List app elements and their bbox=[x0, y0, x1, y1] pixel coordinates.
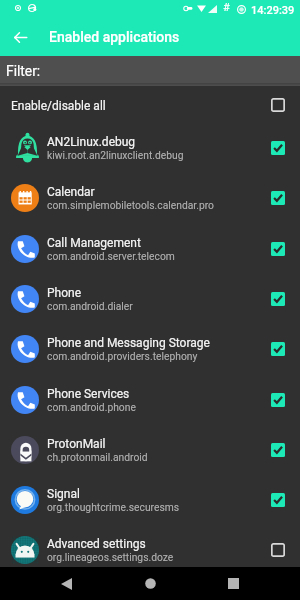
button[interactable]: AN2Linux.debug bbox=[0, 123, 300, 173]
staticText: com.android.providers.telephony bbox=[47, 350, 198, 362]
button[interactable]: Enable/disable all bbox=[0, 86, 300, 122]
staticText: Call Management bbox=[47, 236, 141, 250]
staticText: Enabled applications bbox=[49, 29, 180, 45]
staticText: Phone and Messaging Storage bbox=[47, 336, 210, 350]
button[interactable]: Home bbox=[134, 567, 167, 600]
staticText: com.android.phone bbox=[47, 401, 136, 413]
staticText: Advanced settings bbox=[47, 537, 146, 551]
staticText: org.thoughtcrime.securesms bbox=[47, 501, 180, 513]
staticText: Filter: bbox=[6, 63, 41, 79]
staticText: Enable/disable all bbox=[11, 99, 106, 113]
staticText: ch.protonmail.android bbox=[47, 451, 148, 463]
button[interactable]: Advanced settings bbox=[0, 525, 300, 568]
staticText: Calendar bbox=[47, 185, 95, 199]
staticText: Phone bbox=[47, 286, 82, 300]
staticText: org.lineageos.settings.doze bbox=[47, 551, 174, 563]
button[interactable]: Signal bbox=[0, 475, 300, 525]
button[interactable]: Call Management bbox=[0, 224, 300, 274]
button[interactable]: Phone and Messaging Storage bbox=[0, 324, 300, 374]
staticText: 14:29:39 bbox=[251, 4, 295, 17]
button[interactable]: Recents bbox=[217, 567, 250, 600]
button[interactable]: Phone bbox=[0, 274, 300, 324]
staticText: ProtonMail bbox=[47, 437, 106, 451]
button[interactable]: Calendar bbox=[0, 173, 300, 223]
button[interactable]: Back bbox=[7, 24, 33, 50]
staticText: Signal bbox=[47, 487, 80, 501]
staticText: AN2Linux.debug bbox=[47, 135, 136, 149]
button[interactable]: Back bbox=[50, 567, 83, 600]
staticText: # bbox=[223, 1, 230, 14]
button[interactable]: Phone Services bbox=[0, 375, 300, 425]
staticText: Phone Services bbox=[47, 387, 130, 401]
button[interactable]: ProtonMail bbox=[0, 425, 300, 475]
staticText: kiwi.root.an2linuxclient.debug bbox=[47, 149, 184, 161]
staticText: com.simplemobiletools.calendar.pro bbox=[47, 199, 214, 211]
staticText: com.android.server.telecom bbox=[47, 250, 175, 262]
staticText: com.android.dialer bbox=[47, 300, 133, 312]
